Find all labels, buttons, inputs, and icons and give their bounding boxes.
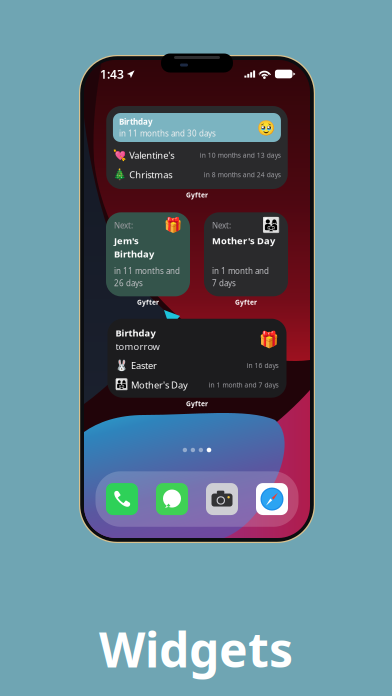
staticText: 🎁 bbox=[258, 330, 278, 349]
staticText: Next: bbox=[212, 220, 231, 231]
staticText: in 11 months and bbox=[114, 266, 180, 276]
staticText: 26 days bbox=[114, 278, 143, 288]
staticText: Gyfter bbox=[186, 190, 208, 199]
staticText: tomorrow bbox=[115, 340, 159, 352]
staticText: Mother's Day bbox=[131, 379, 188, 391]
staticText: Christmas bbox=[129, 169, 172, 181]
button[interactable]: Messages bbox=[156, 483, 188, 515]
staticText: Mother's Day bbox=[212, 234, 275, 247]
staticText: Gyfter bbox=[137, 298, 159, 307]
staticText: Birthday bbox=[119, 116, 153, 127]
staticText: 🥹 bbox=[257, 119, 275, 136]
button[interactable]: Safari bbox=[256, 483, 288, 515]
button[interactable]: Phone bbox=[106, 483, 138, 515]
staticText: Gyfter bbox=[235, 298, 257, 307]
staticText: Jem's bbox=[114, 234, 139, 247]
staticText: 🎄 bbox=[113, 169, 126, 181]
staticText: Easter bbox=[131, 359, 157, 372]
button[interactable]: Next: bbox=[106, 212, 190, 296]
button[interactable]: Next: bbox=[204, 212, 288, 296]
staticText: 🎁 bbox=[164, 217, 182, 234]
staticText: in 11 months and 30 days bbox=[119, 128, 216, 139]
staticText: Birthday bbox=[115, 327, 155, 339]
staticText: in 8 months and 24 days bbox=[204, 170, 281, 179]
button[interactable]: Birthday bbox=[107, 319, 286, 398]
staticText: 👨‍👩‍👧 bbox=[262, 217, 280, 234]
button[interactable]: Camera bbox=[206, 483, 238, 515]
staticText: in 1 month and bbox=[212, 266, 269, 276]
staticText: in 16 days bbox=[246, 361, 278, 370]
staticText: in 1 month and 7 days bbox=[208, 380, 278, 389]
staticText: Next: bbox=[114, 220, 133, 231]
button[interactable]: Birthday bbox=[106, 106, 288, 189]
staticText: 👨‍👩‍👧 bbox=[114, 379, 127, 391]
staticText: 🐰 bbox=[114, 359, 127, 371]
staticText: Widgets bbox=[99, 617, 293, 681]
staticText: in 10 months and 13 days bbox=[200, 151, 281, 160]
staticText: Valentine's bbox=[129, 149, 174, 161]
staticText: 7 days bbox=[212, 278, 236, 288]
staticText: Birthday bbox=[114, 248, 154, 260]
staticText: Gyfter bbox=[186, 399, 208, 408]
staticText: 💘 bbox=[113, 149, 126, 161]
staticText: 1:43 bbox=[100, 66, 124, 82]
